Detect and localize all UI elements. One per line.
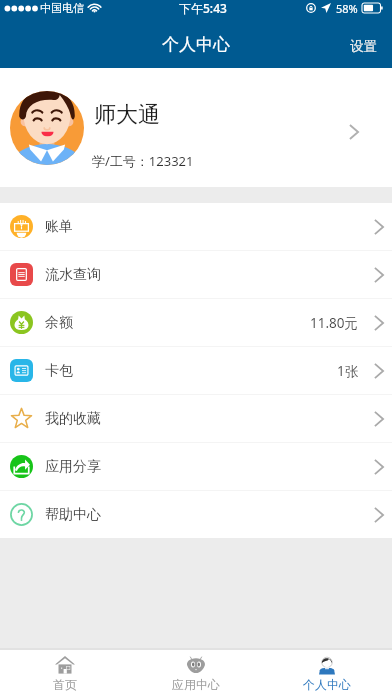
button[interactable]: 我的收藏 <box>0 395 392 442</box>
staticText: 卡包 <box>45 362 73 380</box>
staticText: 应用分享 <box>45 458 101 476</box>
staticText: 账单 <box>45 218 73 236</box>
button[interactable]: 应用中心 <box>130 650 261 696</box>
button[interactable]: 设置 <box>336 23 392 66</box>
staticText: 我的收藏 <box>45 410 101 428</box>
button[interactable]: 余额 <box>0 299 392 346</box>
staticText: 应用中心 <box>172 677 220 692</box>
button[interactable]: 应用分享 <box>0 443 392 490</box>
button[interactable]: 卡包 <box>0 347 392 394</box>
staticText: 学/工号：123321 <box>92 152 194 170</box>
staticText: 11.80元 <box>310 314 359 332</box>
button[interactable]: 个人中心 <box>261 650 392 696</box>
staticText: 中国电信 <box>40 1 84 15</box>
staticText: 余额 <box>45 314 73 332</box>
button[interactable]: 流水查询 <box>0 251 392 298</box>
staticText: 1张 <box>337 362 359 380</box>
staticText: 设置 <box>350 38 377 55</box>
staticText: 首页 <box>53 677 77 692</box>
staticText: 58% <box>336 1 358 16</box>
button[interactable]: 师大通 <box>0 68 392 187</box>
button[interactable]: 帮助中心 <box>0 491 392 538</box>
button[interactable]: 首页 <box>0 650 130 696</box>
staticText: 流水查询 <box>45 266 101 284</box>
staticText: 个人中心 <box>303 677 351 692</box>
staticText: 师大通 <box>94 101 160 129</box>
staticText: 下午5:43 <box>179 0 227 16</box>
staticText: 个人中心 <box>162 34 230 55</box>
staticText: 帮助中心 <box>45 506 101 524</box>
button[interactable]: 账单 <box>0 203 392 250</box>
